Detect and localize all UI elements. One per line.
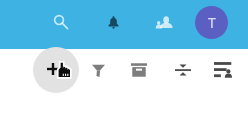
button[interactable]: Filter <box>82 54 114 86</box>
button[interactable]: People <box>149 7 181 39</box>
button[interactable]: Add <box>33 47 79 93</box>
button[interactable]: Search <box>45 6 77 38</box>
staticText: T <box>208 13 216 32</box>
button[interactable]: Notifications <box>97 6 129 38</box>
button[interactable]: Collapse all <box>167 54 199 86</box>
button[interactable]: Archive <box>123 54 155 86</box>
button[interactable]: Account <box>195 6 228 39</box>
button[interactable]: Assign <box>207 54 239 86</box>
